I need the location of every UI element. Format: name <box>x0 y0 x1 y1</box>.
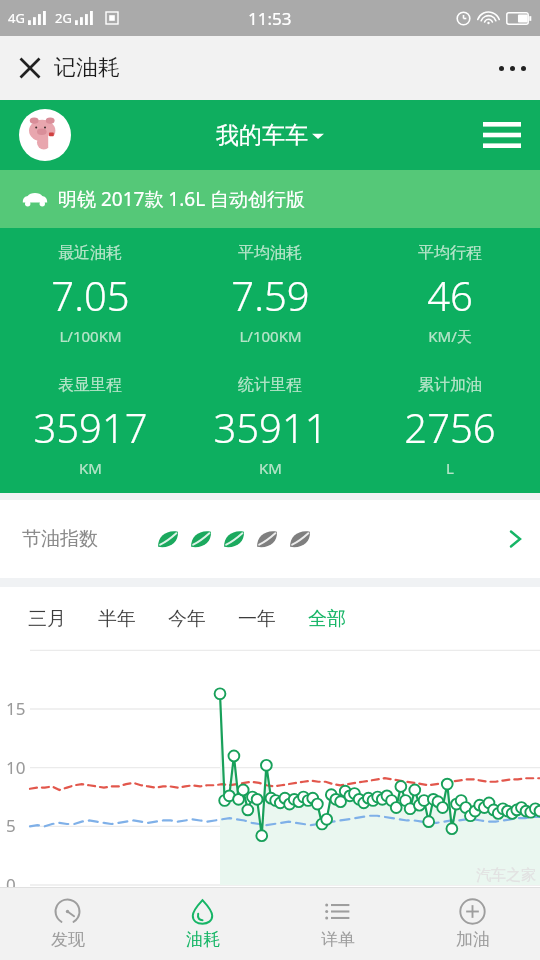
staticText: 明锐 2017款 1.6L 自动创行版 <box>58 186 306 212</box>
staticText: 35911 <box>213 400 328 454</box>
staticText: L <box>446 458 454 478</box>
staticText: KM <box>259 458 282 478</box>
staticText: 全部 <box>308 607 346 631</box>
button[interactable]: 累计加油 <box>360 360 540 493</box>
staticText: L/100KM <box>239 326 302 346</box>
staticText: 汽车之家 <box>476 866 536 885</box>
staticText: 46 <box>427 268 473 322</box>
staticText: 10 <box>6 756 26 779</box>
staticText: 11:53 <box>248 7 292 30</box>
staticText: 15 <box>6 697 26 720</box>
button[interactable]: 今年 <box>152 587 222 651</box>
button[interactable]: Close <box>6 44 54 92</box>
staticText: 35917 <box>33 400 148 454</box>
button[interactable]: 发现 <box>0 888 135 960</box>
button[interactable]: More options <box>484 40 540 96</box>
button[interactable]: 一年 <box>222 587 292 651</box>
staticText: 7.59 <box>231 268 310 322</box>
staticText: 5 <box>6 814 16 837</box>
staticText: 一年 <box>238 607 276 631</box>
staticText: 今年 <box>168 607 206 631</box>
staticText: 记油耗 <box>54 54 120 82</box>
staticText: 我的车车 <box>216 121 308 150</box>
staticText: 半年 <box>98 607 136 631</box>
button[interactable]: 表显里程 <box>0 360 180 493</box>
staticText: 7.05 <box>51 268 130 322</box>
button[interactable]: 半年 <box>82 587 152 651</box>
staticText: 平均油耗 <box>238 243 302 263</box>
staticText: 统计里程 <box>238 375 302 395</box>
staticText: 2G <box>55 9 72 27</box>
button[interactable]: 全部 <box>292 587 362 651</box>
staticText: 累计加油 <box>418 375 482 395</box>
staticText: 加油 <box>456 929 490 950</box>
staticText: 平均行程 <box>418 243 482 263</box>
staticText: 最近油耗 <box>58 243 122 263</box>
staticText: 发现 <box>51 929 85 950</box>
button[interactable]: 最近油耗 <box>0 228 180 360</box>
staticText: 油耗 <box>186 929 220 950</box>
button[interactable]: 详单 <box>270 888 405 960</box>
button[interactable]: 平均行程 <box>360 228 540 360</box>
staticText: 详单 <box>321 929 355 950</box>
staticText: KM <box>79 458 102 478</box>
button[interactable]: 加油 <box>405 888 540 960</box>
staticText: 三月 <box>28 607 66 631</box>
staticText: 表显里程 <box>58 375 122 395</box>
button[interactable]: 三月 <box>12 587 82 651</box>
button[interactable]: 我的车车 <box>216 121 324 150</box>
button[interactable]: 统计里程 <box>180 360 360 493</box>
staticText: 节油指数 <box>22 527 98 551</box>
button[interactable]: Menu <box>474 107 530 163</box>
staticText: L/100KM <box>59 326 122 346</box>
button[interactable]: Profile avatar <box>19 109 71 161</box>
button[interactable]: 油耗 <box>135 888 270 960</box>
staticText: 0 <box>6 873 16 896</box>
staticText: 4G <box>8 9 25 27</box>
button[interactable]: 平均油耗 <box>180 228 360 360</box>
staticText: KM/天 <box>428 326 472 346</box>
staticText: 2756 <box>404 400 496 454</box>
button[interactable]: 节油指数 <box>0 500 540 578</box>
